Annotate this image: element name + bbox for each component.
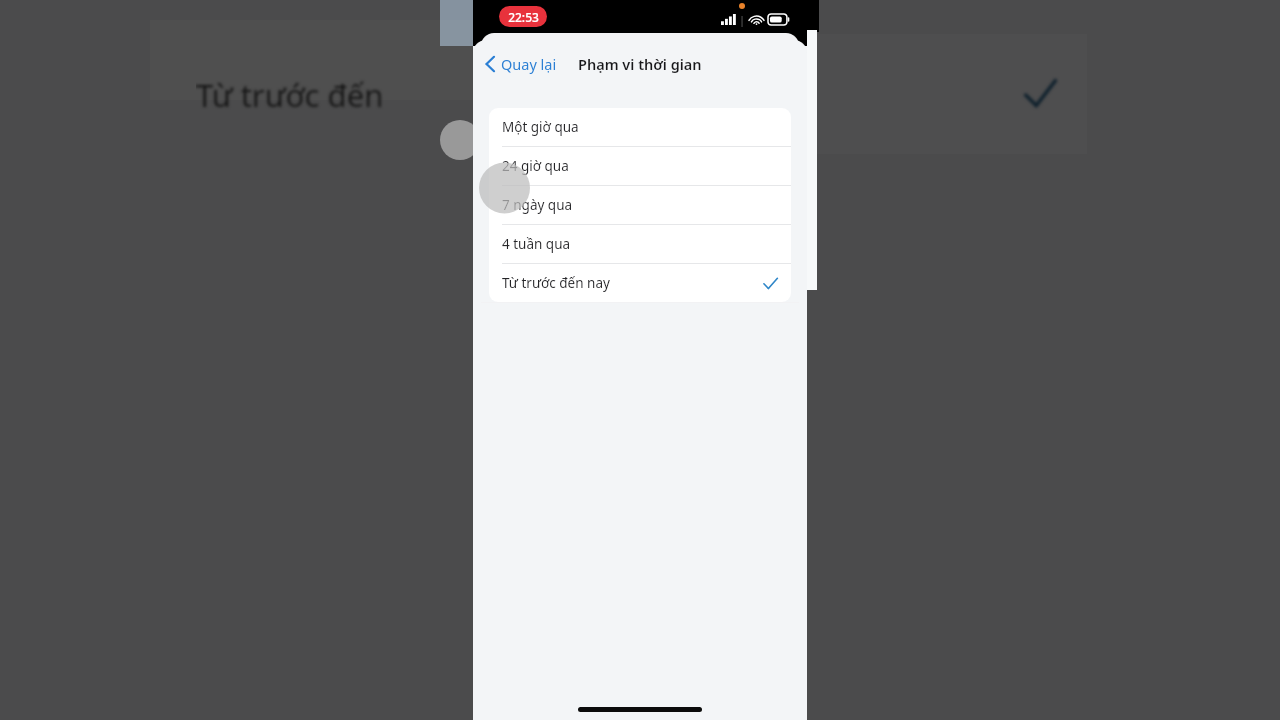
staticText: Quay lại	[501, 54, 557, 74]
button[interactable]: 4 tuần qua	[489, 225, 791, 263]
staticText: 4 tuần qua	[502, 235, 571, 253]
staticText: 22:53	[508, 9, 539, 25]
staticText: |	[739, 12, 746, 27]
button[interactable]: Quay lại	[481, 50, 561, 78]
staticText: 24 giờ qua	[502, 157, 569, 175]
button[interactable]: 7 ngày qua	[489, 186, 791, 224]
staticText: Từ trước đến	[196, 74, 384, 116]
staticText: 7 ngày qua	[502, 196, 573, 214]
button[interactable]: Từ trước đến nay	[489, 264, 791, 302]
staticText: Từ trước đến nay	[502, 274, 610, 292]
staticText: Một giờ qua	[502, 118, 579, 136]
button[interactable]: Một giờ qua	[489, 108, 791, 146]
staticText: Phạm vi thời gian	[578, 54, 702, 74]
button[interactable]: 24 giờ qua	[489, 147, 791, 185]
